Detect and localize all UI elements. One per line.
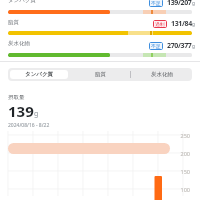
button[interactable]: 不足: [151, 43, 161, 49]
staticText: タンパク質: [25, 71, 54, 78]
staticText: g: [192, 21, 195, 28]
staticText: 摂取量: [8, 94, 25, 101]
staticText: 139/207: [167, 0, 192, 8]
staticText: 不足: [151, 0, 161, 6]
staticText: 炭水化物: [151, 71, 173, 78]
staticText: タンパク質: [8, 0, 37, 4]
button[interactable]: タンパク質: [10, 70, 68, 79]
staticText: 脂質: [8, 19, 19, 26]
staticText: 139: [8, 101, 34, 121]
staticText: g: [34, 109, 39, 119]
staticText: 131/84: [171, 19, 192, 29]
staticText: 2024/08/16 - 8/22: [8, 122, 50, 129]
button[interactable]: 脂質: [70, 68, 131, 81]
staticText: 100: [174, 186, 190, 193]
staticText: g: [192, 43, 195, 50]
staticText: g: [192, 0, 195, 7]
staticText: 脂質: [95, 71, 106, 78]
button[interactable]: 不足: [151, 0, 161, 6]
staticText: 炭水化物: [8, 40, 30, 47]
button[interactable]: 過剰: [155, 21, 165, 27]
staticText: 250: [174, 132, 190, 139]
staticText: 200: [174, 150, 190, 157]
staticText: 150: [174, 168, 190, 175]
staticText: 270/377: [167, 41, 192, 51]
staticText: 不足: [151, 43, 161, 49]
staticText: 過剰: [155, 21, 165, 27]
button[interactable]: 炭水化物: [131, 68, 192, 81]
